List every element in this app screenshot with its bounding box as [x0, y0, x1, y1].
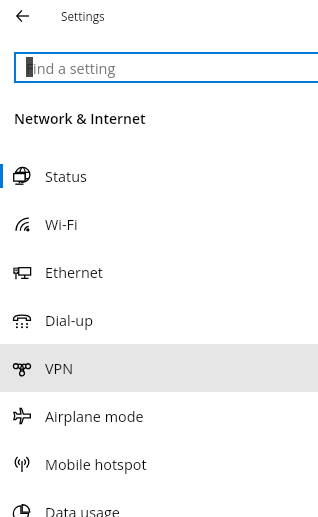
button[interactable]: Back — [6, 4, 38, 28]
staticText: ind a setting — [33, 59, 116, 79]
button[interactable]: Mobile hotspot — [0, 440, 318, 488]
staticText: Data usage — [45, 503, 120, 517]
staticText: Dial-up — [45, 311, 93, 331]
staticText: F — [26, 59, 34, 79]
button[interactable]: Status — [0, 152, 318, 200]
button[interactable]: Airplane mode — [0, 392, 318, 440]
button[interactable]: VPN — [0, 344, 318, 392]
button[interactable]: Data usage — [0, 488, 318, 517]
staticText: Network & Internet — [14, 109, 146, 128]
staticText: Ethernet — [45, 263, 103, 283]
staticText: Wi-Fi — [45, 215, 78, 235]
staticText: Settings — [61, 8, 105, 24]
staticText: Mobile hotspot — [45, 455, 147, 475]
staticText: Status — [45, 167, 87, 187]
button[interactable]: Ethernet — [0, 248, 318, 296]
staticText: VPN — [45, 359, 74, 379]
button[interactable]: Dial-up — [0, 296, 318, 344]
button[interactable]: Find a setting — [14, 52, 318, 83]
button[interactable]: Wi-Fi — [0, 200, 318, 248]
staticText: Airplane mode — [45, 407, 144, 427]
